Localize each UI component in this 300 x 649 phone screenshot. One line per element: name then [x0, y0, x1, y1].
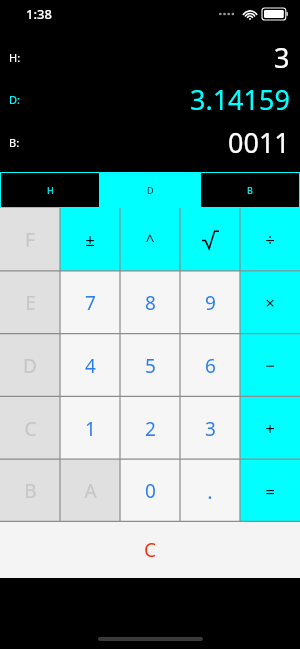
- button[interactable]: 3: [180, 397, 240, 460]
- staticText: ±: [85, 228, 95, 251]
- button[interactable]: 1: [60, 397, 120, 460]
- button[interactable]: Plus minus: [60, 208, 120, 271]
- staticText: 9: [205, 290, 216, 316]
- staticText: 0011: [228, 124, 290, 161]
- staticText: +: [265, 417, 275, 440]
- staticText: E: [25, 290, 36, 316]
- staticText: 1:38: [26, 5, 52, 23]
- button[interactable]: D: [0, 334, 60, 397]
- staticText: ÷: [265, 228, 275, 251]
- staticText: 3: [205, 416, 216, 442]
- staticText: A: [84, 478, 97, 504]
- staticText: C: [144, 537, 157, 563]
- button[interactable]: 9: [180, 271, 240, 334]
- staticText: ×: [265, 291, 275, 314]
- button[interactable]: 8: [120, 271, 180, 334]
- staticText: H:: [9, 50, 21, 65]
- button[interactable]: Equals: [240, 460, 300, 522]
- staticText: 7: [85, 290, 96, 316]
- staticText: H: [47, 184, 54, 196]
- button[interactable]: Multiply: [240, 271, 300, 334]
- button[interactable]: 4: [60, 334, 120, 397]
- staticText: D: [147, 184, 154, 196]
- button[interactable]: 5: [120, 334, 180, 397]
- staticText: −: [265, 354, 275, 377]
- staticText: 0: [145, 478, 156, 504]
- staticText: 5: [145, 353, 156, 379]
- staticText: D:: [9, 92, 20, 107]
- button[interactable]: C: [0, 522, 300, 578]
- staticText: B: [24, 478, 37, 504]
- button[interactable]: 0: [120, 460, 180, 522]
- button[interactable]: B: [200, 172, 300, 208]
- staticText: =: [265, 480, 275, 503]
- button[interactable]: Subtract: [240, 334, 300, 397]
- button[interactable]: B: [0, 460, 60, 522]
- button[interactable]: 2: [120, 397, 180, 460]
- button[interactable]: D: [100, 172, 200, 208]
- staticText: .: [207, 478, 213, 505]
- staticText: B:: [9, 135, 20, 150]
- button[interactable]: Decimal point: [180, 460, 240, 522]
- button[interactable]: Square root: [180, 208, 240, 271]
- staticText: 6: [205, 353, 216, 379]
- staticText: 8: [145, 290, 156, 316]
- button[interactable]: C: [0, 397, 60, 460]
- staticText: 3: [274, 39, 290, 76]
- staticText: D: [23, 353, 37, 379]
- staticText: 2: [145, 416, 156, 442]
- button[interactable]: ^: [120, 208, 180, 271]
- button[interactable]: E: [0, 271, 60, 334]
- staticText: F: [25, 227, 35, 253]
- staticText: B: [247, 184, 253, 196]
- button[interactable]: F: [0, 208, 60, 271]
- staticText: 4: [85, 353, 96, 379]
- button[interactable]: H: [0, 172, 100, 208]
- staticText: ^: [145, 229, 155, 251]
- staticText: 1: [85, 416, 96, 442]
- button[interactable]: A: [60, 460, 120, 522]
- staticText: C: [24, 416, 37, 442]
- button[interactable]: 7: [60, 271, 120, 334]
- staticText: 3.14159: [190, 81, 290, 118]
- button[interactable]: Add: [240, 397, 300, 460]
- button[interactable]: 6: [180, 334, 240, 397]
- button[interactable]: Divide: [240, 208, 300, 271]
